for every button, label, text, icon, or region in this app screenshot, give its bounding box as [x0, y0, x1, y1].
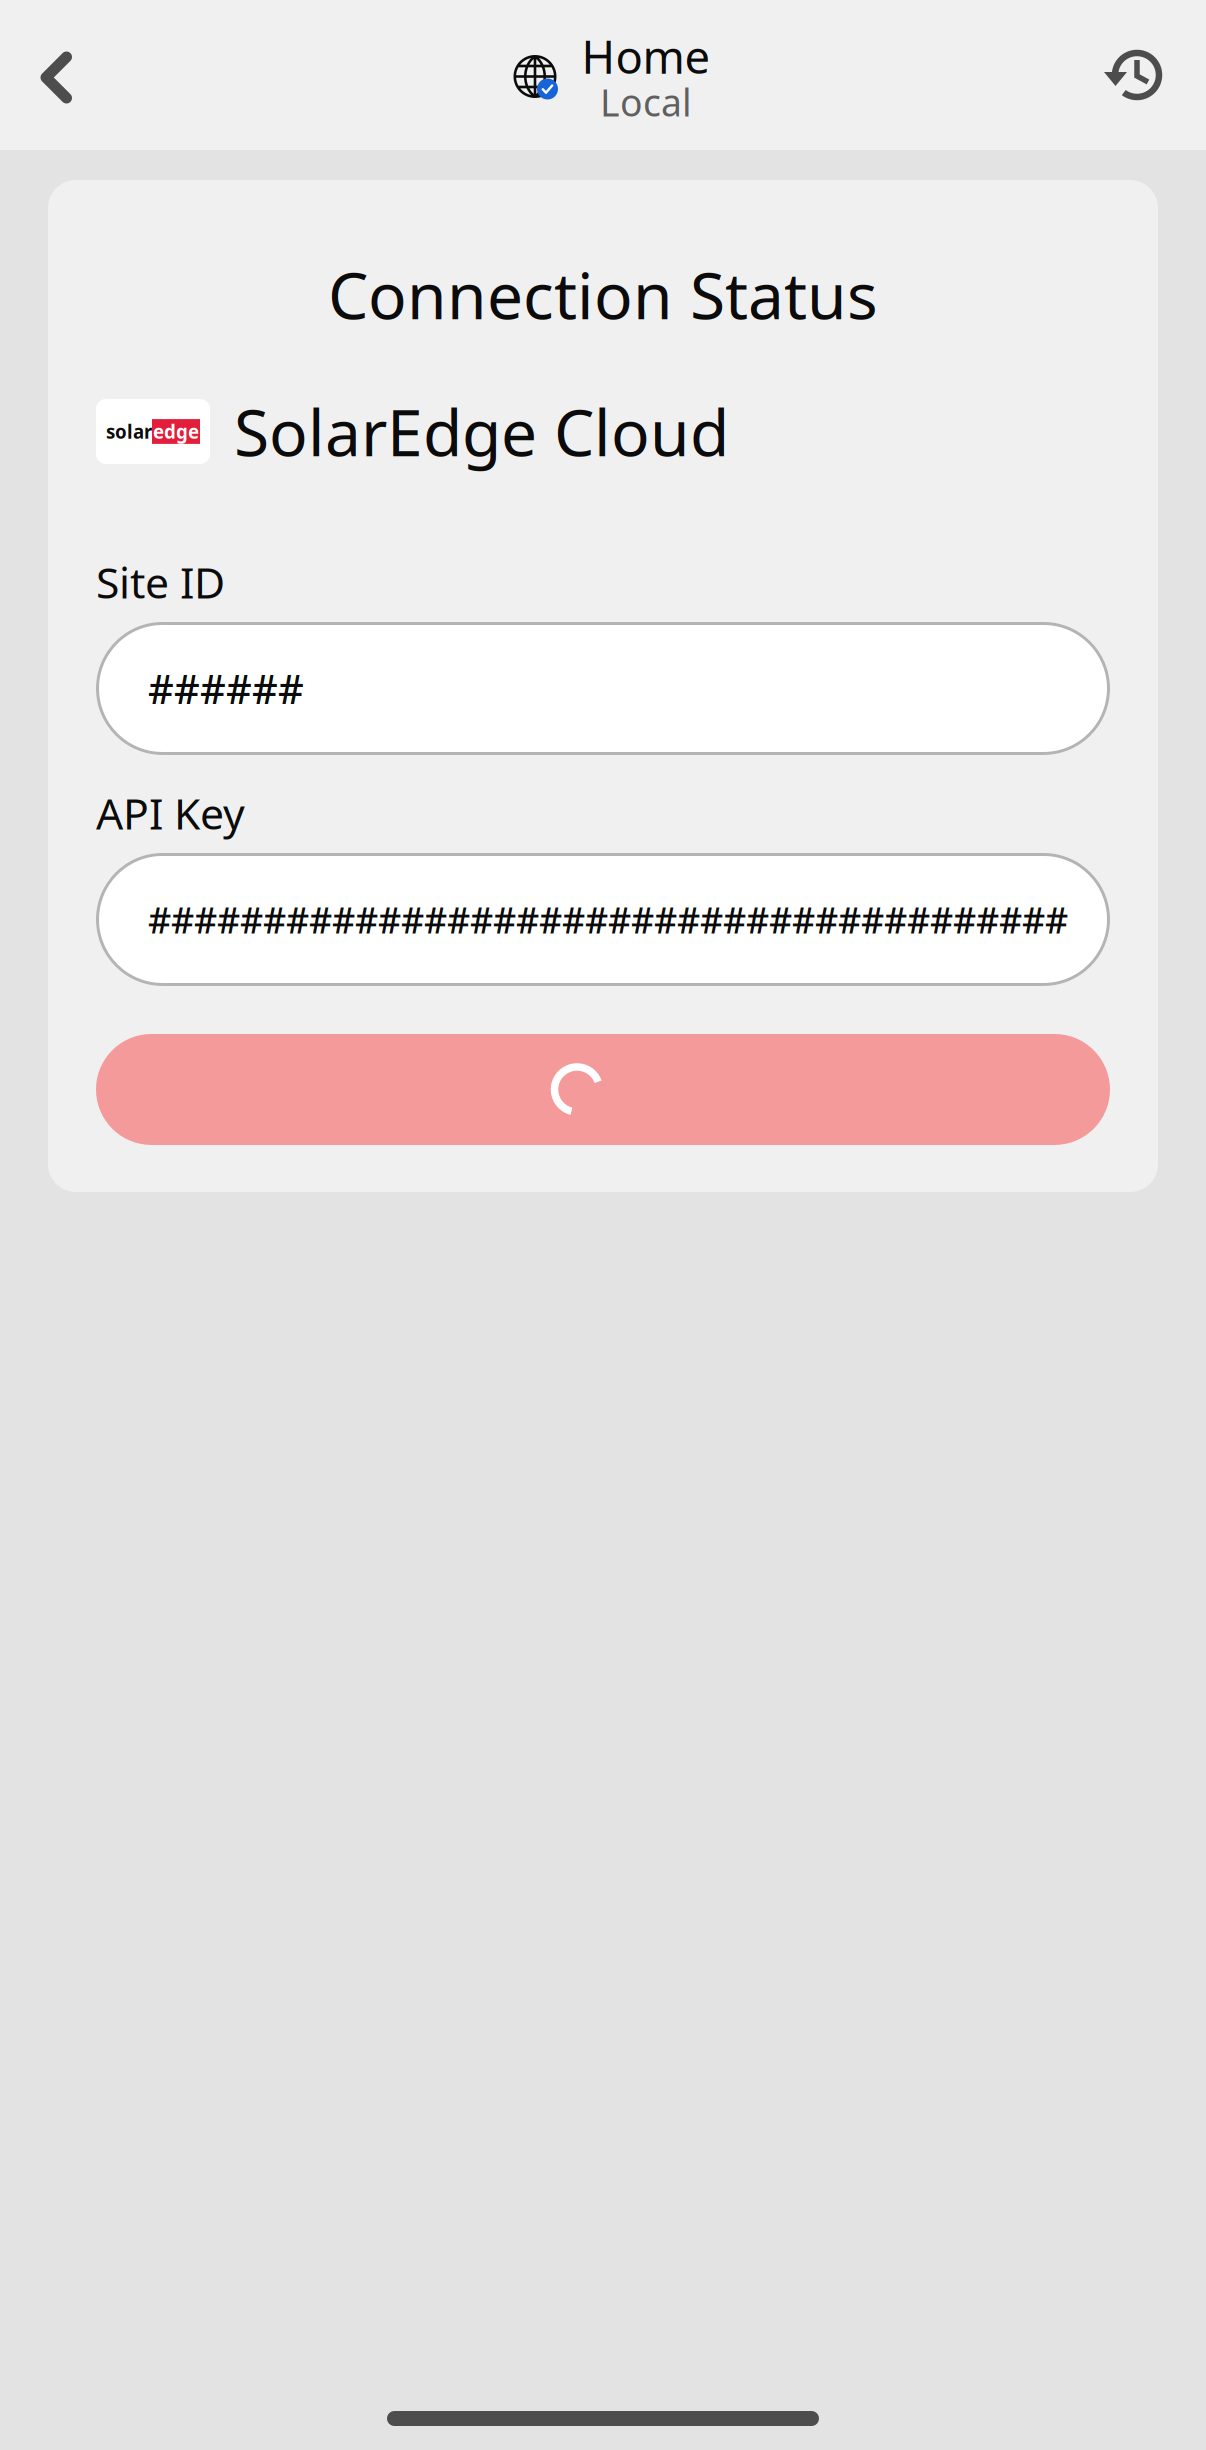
button[interactable]: History [1060, 0, 1206, 150]
button[interactable]: ###### [96, 622, 1110, 755]
button[interactable]: Back [0, 0, 110, 150]
staticText: Home [581, 26, 710, 86]
staticText: ###### [148, 662, 304, 715]
staticText: Connection Status [328, 252, 878, 337]
staticText: API Key [96, 785, 245, 841]
staticText: Local [600, 77, 692, 127]
staticText: ######################################## [148, 896, 1068, 943]
staticText: edge [153, 419, 199, 444]
button[interactable]: ######################################## [96, 853, 1110, 986]
staticText: SolarEdge Cloud [234, 389, 729, 474]
button[interactable]: Connecting [96, 1034, 1110, 1145]
staticText: Site ID [96, 554, 225, 610]
staticText: solar [106, 419, 152, 444]
